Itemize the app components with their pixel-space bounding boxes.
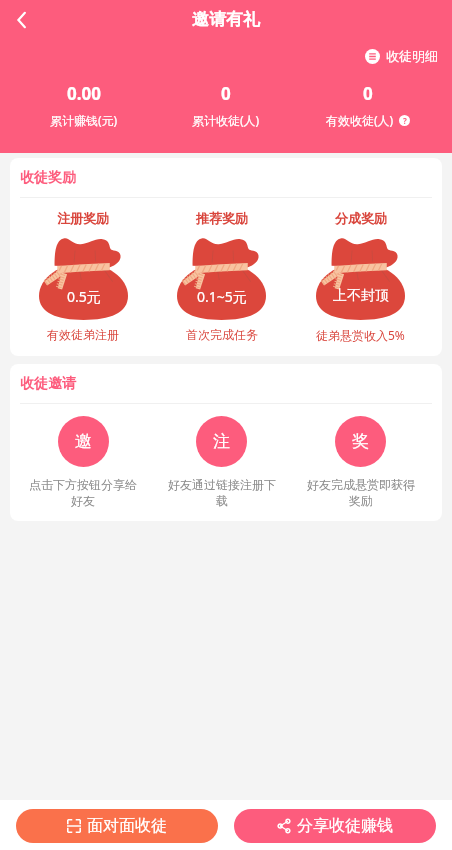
staticText: 首次完成任务 xyxy=(186,327,258,342)
button[interactable]: Help xyxy=(399,115,410,126)
staticText: 0.1~5元 xyxy=(197,287,247,306)
staticText: 邀请有礼 xyxy=(192,9,260,30)
staticText: 收徒奖励 xyxy=(20,169,76,187)
staticText: 0 xyxy=(363,82,373,105)
button[interactable]: 邀 xyxy=(58,416,109,467)
button[interactable]: 分享收徒赚钱 xyxy=(234,809,436,843)
staticText: 推荐奖励 xyxy=(196,210,248,226)
staticText: 面对面收徒 xyxy=(87,816,167,836)
staticText: 注册奖励 xyxy=(57,210,109,226)
staticText: 好友完成悬赏即获得奖励 xyxy=(306,477,416,509)
staticText: 累计收徒(人) xyxy=(192,112,260,128)
staticText: 分成奖励 xyxy=(335,210,387,226)
staticText: 收徒明细 xyxy=(386,48,438,64)
button[interactable]: 收徒明细 xyxy=(365,48,438,64)
staticText: 分享收徒赚钱 xyxy=(297,816,393,836)
staticText: 0 xyxy=(221,82,231,105)
staticText: 0.5元 xyxy=(67,287,101,306)
staticText: 注 xyxy=(213,431,230,452)
button[interactable]: Back xyxy=(6,4,38,36)
staticText: 0.00 xyxy=(67,82,101,105)
button[interactable]: 奖 xyxy=(335,416,386,467)
staticText: 累计赚钱(元) xyxy=(50,112,118,128)
staticText: 点击下方按钮分享给好友 xyxy=(28,477,138,509)
staticText: 有效收徒(人) xyxy=(326,112,394,128)
staticText: ? xyxy=(403,115,407,126)
staticText: 上不封顶 xyxy=(333,287,389,305)
button[interactable]: 面对面收徒 xyxy=(16,809,218,843)
staticText: 奖 xyxy=(352,431,369,452)
button[interactable]: 注 xyxy=(196,416,247,467)
staticText: 收徒邀请 xyxy=(20,375,76,393)
staticText: 徒弟悬赏收入5% xyxy=(316,327,405,343)
staticText: 邀 xyxy=(75,431,92,452)
staticText: 好友通过链接注册下载 xyxy=(167,477,277,509)
staticText: 有效徒弟注册 xyxy=(47,327,119,342)
